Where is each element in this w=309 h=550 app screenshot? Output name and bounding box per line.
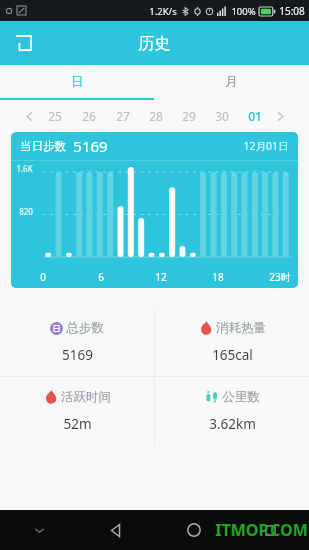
staticText: 3.62km — [209, 415, 256, 433]
staticText: 活跃时间 — [61, 389, 111, 405]
button[interactable]: 消耗热量 — [155, 308, 309, 376]
staticText: 23时 — [269, 270, 291, 284]
button[interactable]: 日 — [0, 65, 154, 98]
button[interactable]: 月 — [154, 65, 309, 98]
staticText: 52m — [63, 415, 92, 433]
button[interactable]: 27 — [106, 100, 139, 132]
staticText: ITMOP.COM — [215, 519, 308, 541]
staticText: 1.2K/s — [149, 5, 177, 18]
staticText: 月 — [225, 74, 238, 90]
staticText: 历史 — [138, 33, 171, 54]
staticText: 0 — [40, 270, 46, 284]
button[interactable]: Hide keyboard — [0, 510, 78, 550]
staticText: 12 — [155, 270, 167, 284]
button[interactable]: 总步数 — [0, 308, 154, 376]
button[interactable]: 30 — [205, 100, 238, 132]
staticText: 100% — [231, 5, 256, 18]
staticText: 6 — [98, 270, 104, 284]
staticText: 29 — [182, 108, 196, 124]
staticText: 5169 — [73, 136, 108, 156]
staticText: 12月01日 — [243, 139, 289, 153]
staticText: 消耗热量 — [216, 320, 266, 336]
button[interactable]: 29 — [172, 100, 205, 132]
button[interactable]: Back — [78, 510, 155, 550]
staticText: 820 — [19, 206, 33, 217]
button[interactable]: Previous week — [20, 107, 38, 125]
staticText: 01 — [248, 108, 262, 124]
button[interactable]: 01 — [238, 100, 271, 132]
staticText: 18 — [212, 270, 224, 284]
staticText: 5169 — [62, 346, 93, 364]
button[interactable]: 当日步数 — [11, 132, 298, 288]
staticText: 30 — [215, 108, 229, 124]
staticText: 15:08 — [279, 4, 305, 18]
staticText: 当日步数 — [20, 139, 66, 153]
staticText: 公里数 — [222, 389, 260, 405]
staticText: 27 — [116, 108, 130, 124]
button[interactable]: 活跃时间 — [0, 377, 154, 445]
staticText: 25 — [48, 108, 62, 124]
button[interactable]: 公里数 — [155, 377, 309, 445]
button[interactable]: 26 — [72, 100, 106, 132]
button[interactable]: Next week — [271, 107, 289, 125]
staticText: 26 — [82, 108, 96, 124]
staticText: 日 — [71, 74, 84, 90]
button[interactable]: Home — [155, 510, 232, 550]
staticText: 28 — [149, 108, 163, 124]
button[interactable]: 25 — [38, 100, 72, 132]
button[interactable]: 28 — [139, 100, 172, 132]
staticText: 1.6K — [16, 163, 33, 174]
staticText: 165cal — [212, 346, 253, 364]
button[interactable]: Recents — [232, 510, 309, 550]
staticText: 总步数 — [66, 320, 104, 336]
button[interactable]: Back — [7, 26, 41, 60]
